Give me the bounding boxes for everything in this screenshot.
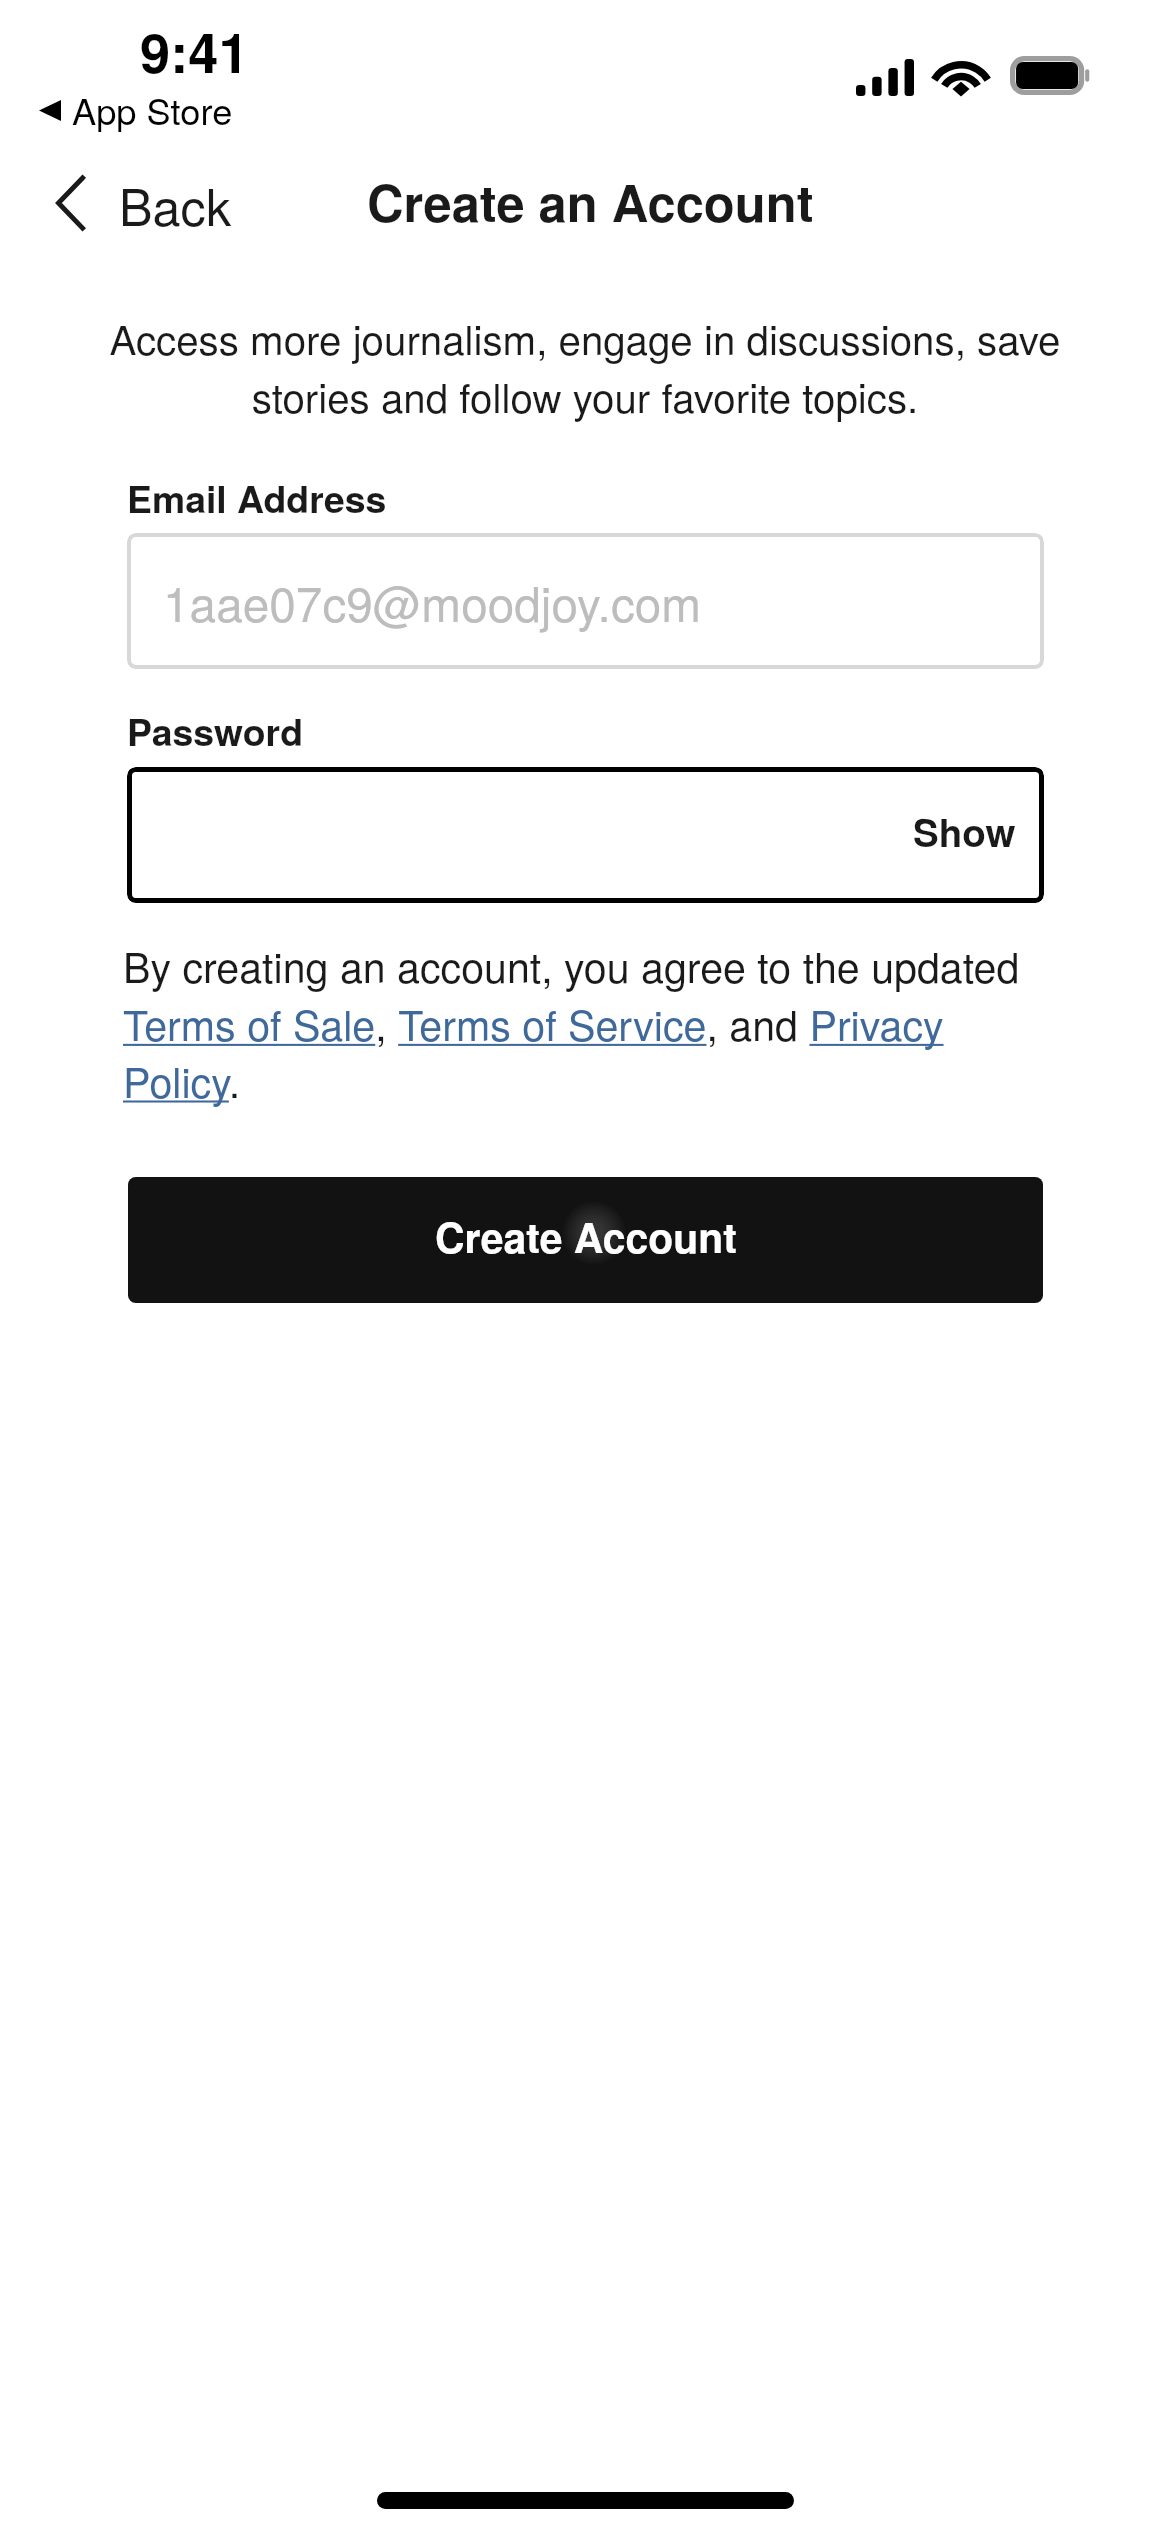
staticText: 1aae07c9@moodjoy.com — [163, 567, 702, 635]
staticText: App Store — [72, 83, 233, 135]
button[interactable]: Privacy Policy — [792, 1002, 920, 1043]
button[interactable]: Show — [913, 804, 1016, 859]
staticText: Back — [119, 168, 232, 240]
staticText: Access more journalism, engage in discus… — [99, 309, 1071, 424]
staticText: Email Address — [127, 471, 387, 525]
button[interactable]: Back — [39, 159, 234, 240]
staticText: 9:41 — [140, 12, 249, 90]
staticText: By creating an account, you agree to the… — [123, 936, 1040, 1109]
staticText: Password — [127, 704, 303, 758]
staticText: Create an Account — [367, 165, 814, 238]
button[interactable]: 1aae07c9@moodjoy.com — [127, 533, 1044, 669]
button[interactable]: Create Account — [128, 1177, 1043, 1303]
button[interactable]: Show — [127, 767, 1044, 903]
staticText: Create Account — [435, 1207, 737, 1266]
button[interactable]: Terms of Service — [397, 1002, 678, 1043]
button[interactable]: Privacy Policy — [128, 1059, 230, 1100]
button[interactable]: Terms of Sale — [128, 1002, 365, 1043]
